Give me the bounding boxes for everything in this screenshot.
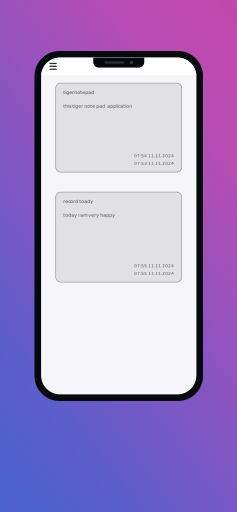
staticText: record toady [63,199,93,204]
button[interactable]: record toady [56,192,182,282]
staticText: today i am very happy [63,213,115,218]
staticText: this tiger note pad application [63,104,132,109]
staticText: 07:55 11.11.2024 [134,264,174,268]
button[interactable]: tigernotepad [56,83,182,172]
button[interactable]: Menu [44,58,62,75]
staticText: 07:53 11.11.2024 [134,161,174,166]
staticText: 07:55 11.11.2024 [134,271,174,276]
staticText: tigernotepad [63,90,94,95]
staticText: 07:54 11.11.2024 [134,154,174,158]
